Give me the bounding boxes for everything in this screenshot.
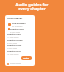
staticText: YOUR LIBRARY [7, 17, 23, 20]
staticText: Chapter Three [7, 39, 23, 42]
button[interactable]: Listen [21, 56, 32, 60]
staticText: Chapter Five [7, 50, 21, 53]
staticText: Audio guides for every chapter [0, 2, 64, 12]
staticText: 24 chapters [12, 25, 23, 27]
staticText: 12 min listen [7, 53, 19, 56]
button[interactable]: Chapter Three [7, 39, 27, 45]
button[interactable]: Downloaded [7, 62, 22, 65]
staticText: 8 min listen [10, 31, 21, 34]
button[interactable]: Chapter Four [7, 44, 27, 50]
staticText: The Odyssey [12, 22, 26, 25]
staticText: 9 min listen [7, 42, 18, 45]
button[interactable]: Chapter Five [7, 50, 27, 56]
staticText: Downloaded [10, 62, 22, 65]
staticText: 11 min listen [7, 36, 19, 39]
staticText: Listen [23, 57, 30, 60]
button[interactable]: The Odyssey [7, 22, 33, 27]
staticText: Chapter One [10, 28, 24, 31]
button[interactable]: Chapter Two [7, 33, 27, 39]
staticText: 7 min listen [7, 47, 18, 50]
staticText: Chapter Four [7, 44, 22, 47]
staticText: Chapter Two [7, 33, 21, 36]
button[interactable]: Chapter One [7, 28, 27, 34]
